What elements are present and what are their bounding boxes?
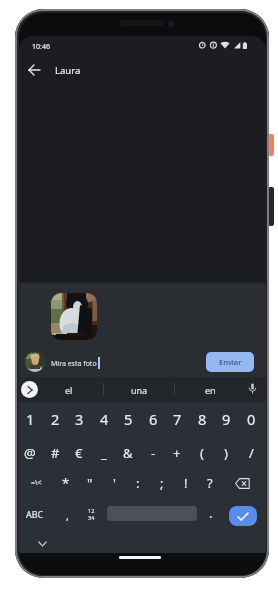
staticText: .	[209, 504, 213, 522]
button[interactable]: #	[44, 440, 66, 466]
button[interactable]: €	[68, 440, 90, 466]
button[interactable]: una	[114, 380, 164, 400]
staticText: &	[123, 444, 133, 462]
staticText: en	[205, 384, 216, 396]
staticText: +	[173, 444, 181, 462]
staticText: ?	[207, 474, 213, 492]
staticText: @	[24, 444, 36, 462]
button[interactable]	[31, 536, 53, 552]
staticText: 7	[173, 409, 182, 429]
button[interactable]: 4	[93, 406, 115, 432]
button[interactable]: '	[104, 470, 124, 496]
staticText: (	[200, 444, 204, 462]
button[interactable]: 8	[191, 406, 213, 432]
button[interactable]: "	[80, 470, 100, 496]
button[interactable]: 6	[142, 406, 164, 432]
staticText: 4	[100, 409, 109, 429]
staticText: =\<	[31, 478, 42, 488]
button[interactable]: )	[215, 440, 237, 466]
button[interactable]	[229, 506, 257, 526]
button[interactable]	[243, 380, 261, 398]
button[interactable]: 9	[215, 406, 237, 432]
button[interactable]: 3	[68, 406, 90, 432]
staticText: 9	[222, 409, 231, 429]
staticText: 12	[88, 507, 95, 514]
staticText: 0	[247, 409, 256, 429]
button[interactable]	[24, 60, 44, 80]
button[interactable]: *	[56, 470, 76, 496]
button[interactable]: 12	[80, 502, 102, 525]
button[interactable]	[51, 293, 97, 340]
button[interactable]: +	[166, 440, 188, 466]
button[interactable]: 2	[44, 406, 66, 432]
staticText: _	[101, 444, 107, 462]
staticText: ;	[160, 474, 164, 492]
button[interactable]: ;	[152, 470, 172, 496]
staticText: ,	[66, 508, 69, 523]
button[interactable]: ,	[58, 503, 76, 527]
staticText: una	[131, 384, 148, 396]
staticText: 8	[198, 409, 207, 429]
staticText: #	[51, 444, 60, 462]
button[interactable]: 0	[240, 406, 262, 432]
button[interactable]: .	[202, 501, 220, 525]
staticText: 1	[26, 409, 35, 429]
staticText: 5	[124, 409, 133, 429]
button[interactable]: _	[93, 440, 115, 466]
staticText: Laura	[55, 64, 81, 77]
button[interactable]	[21, 381, 38, 398]
staticText: el	[65, 384, 73, 396]
staticText: 6	[149, 409, 158, 429]
staticText: Mira esta foto	[51, 359, 97, 369]
staticText: !	[184, 474, 188, 492]
button[interactable]: ?	[200, 470, 220, 496]
staticText: 34	[88, 514, 95, 521]
button[interactable]: ABC	[21, 502, 49, 526]
staticText: *	[62, 474, 70, 492]
staticText: ABC	[26, 508, 44, 520]
button[interactable]: el	[44, 380, 94, 400]
button[interactable]: @	[19, 440, 41, 466]
staticText: Enviar	[219, 357, 242, 367]
staticText: 3	[75, 409, 84, 429]
button[interactable]: !	[176, 470, 196, 496]
button[interactable]: 1	[19, 406, 41, 432]
button[interactable]: &	[117, 440, 139, 466]
button[interactable]: :	[128, 470, 148, 496]
staticText: '	[113, 474, 116, 492]
staticText: 10:46	[32, 42, 50, 52]
button[interactable]: =\<	[23, 471, 49, 495]
staticText: /	[249, 444, 254, 462]
staticText: )	[224, 444, 228, 462]
button[interactable]: Enviar	[206, 352, 254, 372]
button[interactable]: 7	[166, 406, 188, 432]
staticText: €	[75, 444, 83, 462]
staticText: 2	[51, 409, 60, 429]
button[interactable]: /	[240, 440, 262, 466]
staticText: :	[136, 474, 140, 492]
button[interactable]: 5	[117, 406, 139, 432]
button[interactable]: en	[185, 380, 235, 400]
button[interactable]	[229, 471, 256, 495]
staticText: -	[151, 444, 156, 462]
button[interactable]: -	[142, 440, 164, 466]
staticText: "	[87, 474, 93, 492]
button[interactable]: (	[191, 440, 213, 466]
